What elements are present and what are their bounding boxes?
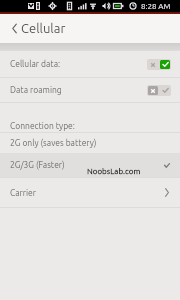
- button[interactable]: Data roaming: [0, 78, 180, 102]
- button[interactable]: Carrier: [0, 178, 180, 207]
- staticText: 2G only (saves battery): [10, 138, 97, 148]
- staticText: Connection type:: [10, 121, 75, 131]
- staticText: NoobsLab.com: [87, 167, 141, 176]
- button[interactable]: 2G only (saves battery): [0, 133, 180, 153]
- other: Back: [12, 23, 17, 34]
- button[interactable]: 2G/3G (Faster): [0, 153, 180, 177]
- staticText: 8:28 AM: [141, 2, 171, 11]
- staticText: Cellular: [21, 21, 66, 36]
- button[interactable]: Back: [0, 14, 180, 43]
- staticText: Cellular data:: [10, 59, 61, 69]
- staticText: Carrier: [10, 188, 37, 198]
- button[interactable]: On: [147, 59, 171, 70]
- button[interactable]: Off: [147, 85, 171, 96]
- staticText: 2G/3G (Faster): [10, 160, 65, 170]
- staticText: Data roaming: [10, 85, 62, 95]
- button[interactable]: Cellular data:: [0, 51, 180, 77]
